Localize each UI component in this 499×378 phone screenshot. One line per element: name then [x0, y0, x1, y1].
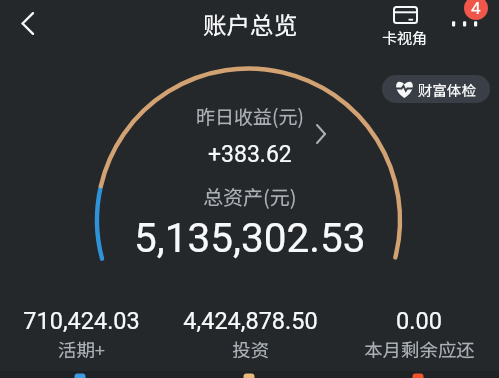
staticText: 财富体检: [418, 79, 476, 100]
button[interactable]: 财富体检: [382, 75, 490, 103]
staticText: 4,424,878.50: [183, 307, 318, 335]
staticText: 4: [471, 0, 481, 18]
staticText: 710,424.03: [23, 307, 140, 335]
button[interactable]: 0.00: [336, 307, 499, 363]
staticText: 卡视角: [382, 27, 428, 49]
staticText: 0.00: [396, 307, 442, 335]
staticText: 账户总览: [203, 7, 297, 41]
staticText: 投资: [232, 336, 269, 363]
staticText: 昨日收益(元): [196, 102, 304, 130]
staticText: 本月剩余应还: [364, 336, 475, 363]
staticText: 5,135,302.53: [134, 214, 366, 261]
staticText: 总资产(元): [203, 182, 297, 211]
button[interactable]: 4,424,878.50: [167, 307, 333, 363]
button[interactable]: 卡视角: [379, 6, 431, 49]
staticText: 活期+: [58, 336, 105, 363]
button[interactable]: 昨日收益(元): [196, 102, 304, 168]
staticText: +383.62: [208, 141, 292, 168]
button[interactable]: 710,424.03: [0, 307, 164, 363]
button[interactable]: Back: [6, 1, 50, 45]
button[interactable]: More options: [443, 0, 491, 36]
